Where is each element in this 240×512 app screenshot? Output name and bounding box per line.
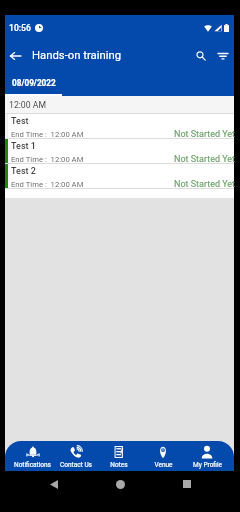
staticText: Test 2	[11, 166, 36, 177]
button[interactable]: Recents	[174, 471, 200, 497]
staticText: My Profile	[193, 461, 222, 469]
staticText: Hands-on training	[32, 49, 122, 62]
staticText: Contact Us	[60, 461, 92, 469]
button[interactable]: Filter	[212, 41, 234, 70]
staticText: Notes	[110, 461, 128, 469]
button[interactable]: 08/09/2022	[5, 70, 62, 96]
staticText: Not Started Yet	[174, 179, 236, 190]
button[interactable]: Test	[5, 114, 234, 139]
button[interactable]: Contact Us	[54, 441, 97, 471]
staticText: 12:00 AM	[9, 100, 47, 110]
staticText: Test	[11, 116, 29, 127]
button[interactable]: Home	[107, 471, 133, 497]
button[interactable]: Venue	[141, 441, 185, 471]
button[interactable]: Notifications	[11, 441, 54, 471]
staticText: End Time : 12:00 AM	[11, 180, 84, 189]
staticText: Venue	[154, 461, 173, 469]
staticText: 08/09/2022	[12, 78, 56, 88]
staticText: 10:56	[9, 23, 31, 33]
button[interactable]: Notes	[97, 441, 141, 471]
staticText: Test 1	[11, 141, 36, 152]
button[interactable]: Test 2	[5, 164, 234, 189]
button[interactable]: Back	[41, 471, 67, 497]
staticText: End Time : 12:00 AM	[11, 130, 84, 139]
button[interactable]: Search	[190, 41, 212, 70]
button[interactable]: Back	[5, 41, 26, 70]
staticText: Notifications	[14, 461, 51, 469]
button[interactable]: My Profile	[185, 441, 229, 471]
staticText: Not Started Yet	[174, 154, 236, 165]
button[interactable]: Test 1	[5, 139, 234, 164]
staticText: Not Started Yet	[174, 129, 236, 140]
staticText: End Time : 12:00 AM	[11, 155, 84, 164]
